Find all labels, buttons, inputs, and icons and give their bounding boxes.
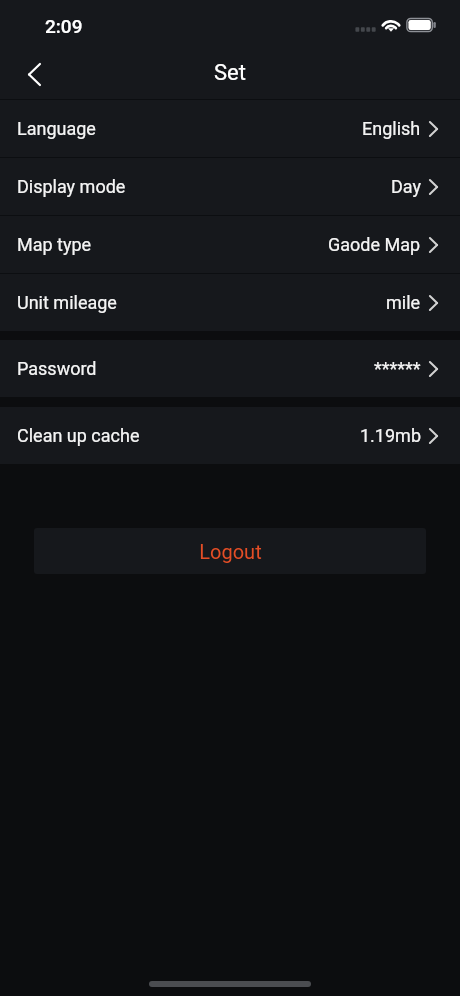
button[interactable]: Language <box>0 100 460 157</box>
staticText: Display mode <box>17 176 126 197</box>
button[interactable]: Display mode <box>0 158 460 215</box>
button[interactable]: Logout <box>34 528 426 574</box>
staticText: Language <box>17 118 96 139</box>
staticText: ****** <box>374 358 421 379</box>
staticText: Gaode Map <box>328 234 421 255</box>
staticText: 2:09 <box>45 15 83 37</box>
button[interactable]: Back <box>0 49 70 99</box>
staticText: English <box>362 118 421 139</box>
button[interactable]: Password <box>0 340 460 397</box>
staticText: Logout <box>199 540 262 563</box>
staticText: mile <box>386 292 421 313</box>
staticText: Unit mileage <box>17 292 117 313</box>
staticText: Clean up cache <box>17 425 140 446</box>
staticText: Map type <box>17 234 92 255</box>
staticText: Password <box>17 358 97 379</box>
button[interactable]: Clean up cache <box>0 407 460 464</box>
button[interactable]: Unit mileage <box>0 274 460 331</box>
staticText: 1.19mb <box>360 425 421 446</box>
staticText: Day <box>391 176 421 197</box>
staticText: Set <box>214 60 246 86</box>
button[interactable]: Map type <box>0 216 460 273</box>
